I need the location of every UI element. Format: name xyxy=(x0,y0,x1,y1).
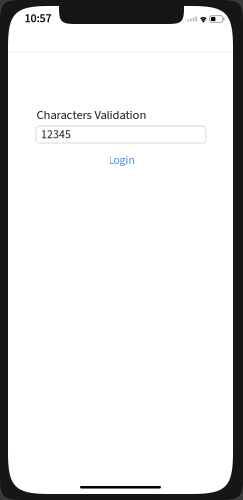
staticText: 12345 xyxy=(41,126,71,143)
staticText: Login xyxy=(108,152,134,169)
staticText: Characters Validation xyxy=(36,106,146,124)
button[interactable]: Login xyxy=(36,154,207,167)
staticText: 10:57 xyxy=(24,10,51,27)
